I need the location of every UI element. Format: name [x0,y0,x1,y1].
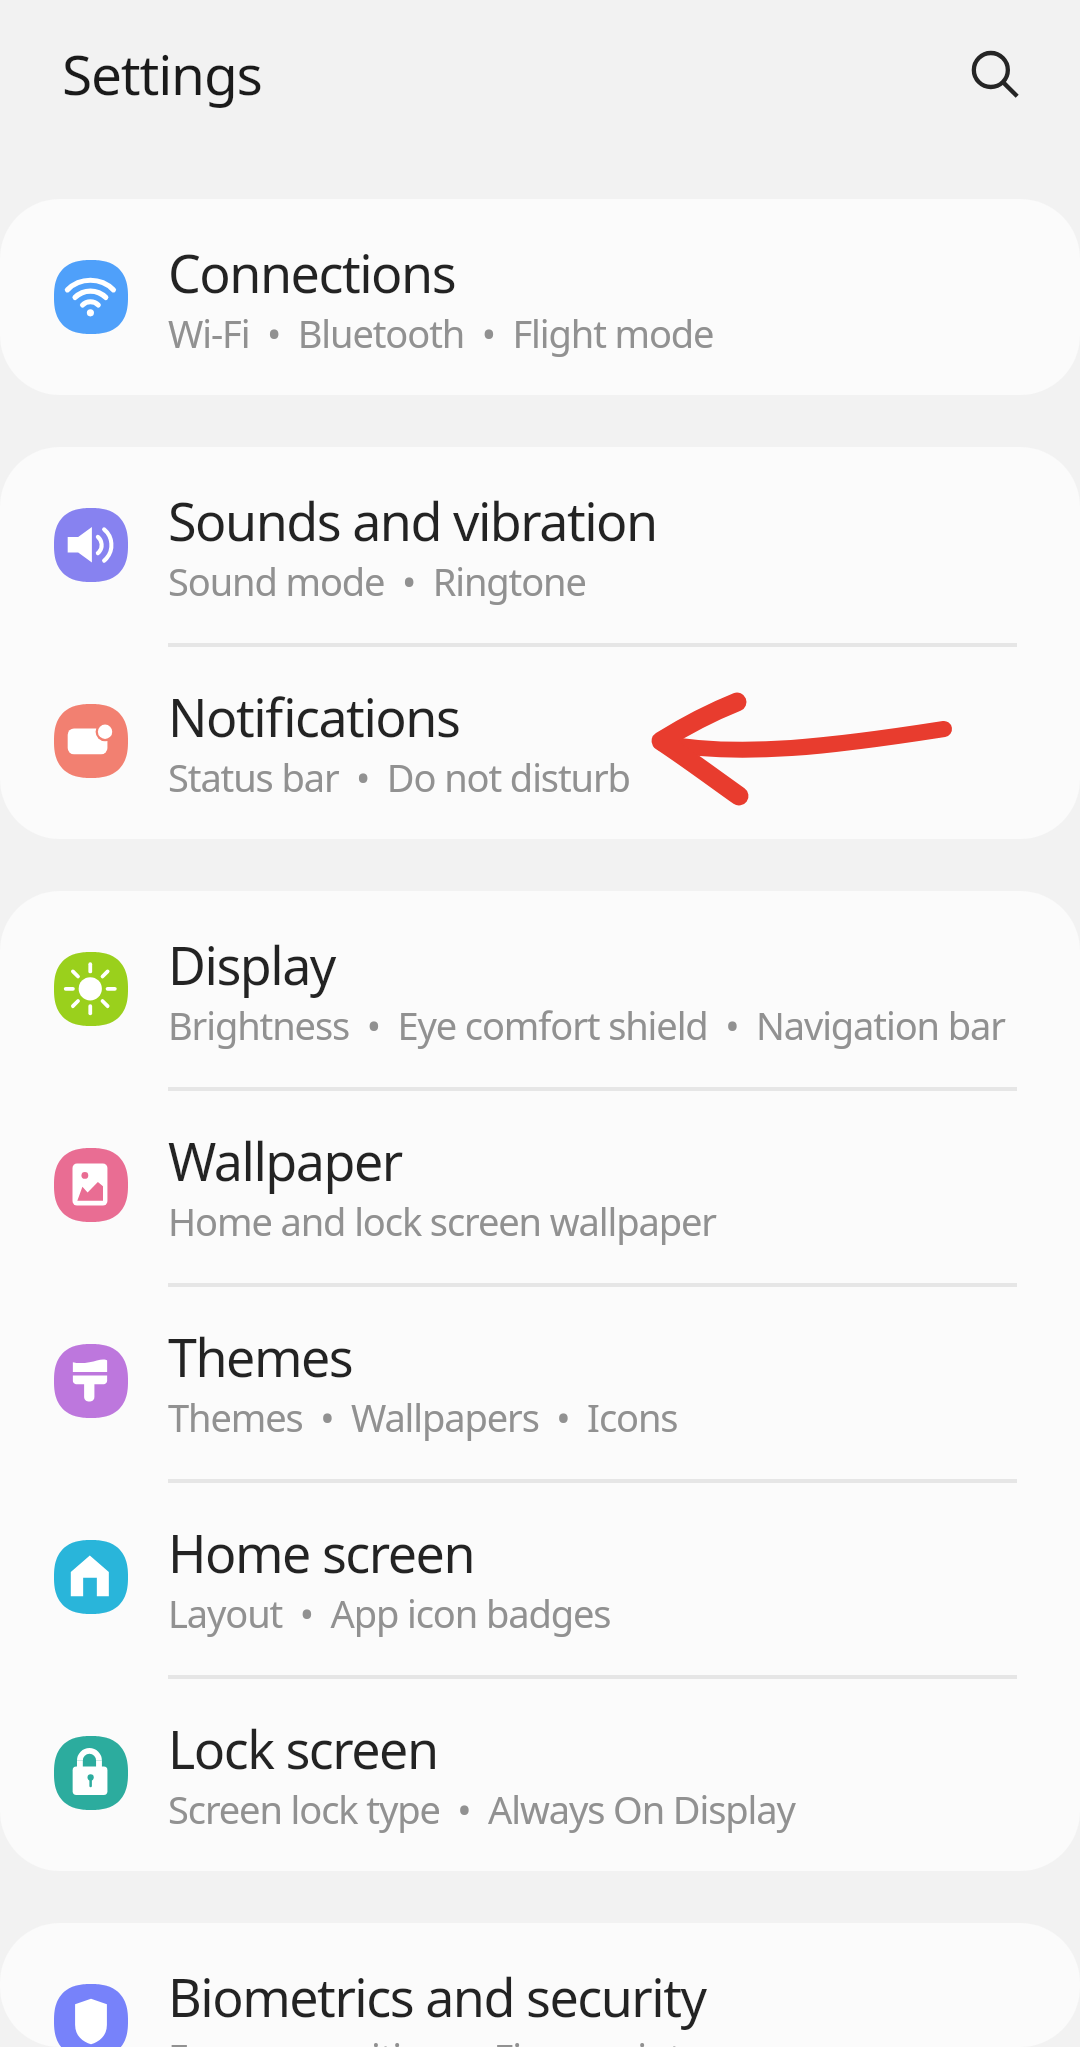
staticText: Biometrics and security [168,1961,706,2032]
staticText: Home and lock screen wallpaper [168,1195,716,1247]
staticText: Home screen [168,1517,475,1588]
staticText: Lock screen [168,1713,438,1784]
staticText: Wallpaper [168,1125,402,1196]
staticText: Sounds and vibration [168,485,657,556]
button[interactable]: Connections [0,199,1080,395]
staticText: Screen lock type • Always On Display [168,1783,795,1835]
staticText: Sound mode • Ringtone [168,555,586,607]
button[interactable]: Themes [0,1283,1080,1479]
staticText: Layout • App icon badges [168,1587,611,1639]
staticText: Settings [62,36,262,111]
button[interactable]: Biometrics and security [0,1923,1080,2047]
button[interactable]: Search [950,28,1035,113]
staticText: Wi-Fi • Bluetooth • Flight mode [168,307,714,359]
button[interactable]: Wallpaper [0,1087,1080,1283]
button[interactable]: Display [0,891,1080,1087]
button[interactable]: Sounds and vibration [0,447,1080,643]
staticText: Themes • Wallpapers • Icons [168,1391,678,1443]
button[interactable]: Notifications [0,643,1080,839]
staticText: Themes [168,1321,353,1392]
staticText: Notifications [168,681,460,752]
staticText: Face recognition • Fingerprints [168,2031,699,2047]
staticText: Brightness • Eye comfort shield • Naviga… [168,999,1005,1051]
staticText: Status bar • Do not disturb [168,751,630,803]
staticText: Display [168,929,335,1000]
staticText: Connections [168,237,456,308]
button[interactable]: Home screen [0,1479,1080,1675]
button[interactable]: Lock screen [0,1675,1080,1871]
